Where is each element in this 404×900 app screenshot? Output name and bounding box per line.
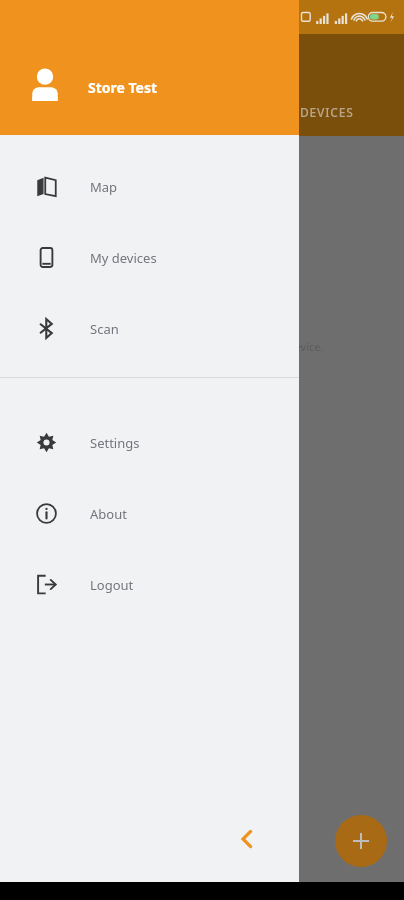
button[interactable]: Settings [0,407,299,478]
button[interactable]: Close drawer [229,821,265,857]
button[interactable]: DEVICES [300,104,354,120]
staticText: Map [90,178,118,196]
button[interactable]: Store Test [0,0,299,135]
button[interactable]: Add device [335,815,387,867]
staticText: My devices [90,249,157,267]
staticText: About [90,505,127,523]
staticText: Store Test [88,78,158,97]
staticText: Logout [90,576,134,594]
button[interactable]: About [0,478,299,549]
staticText: Scan [90,320,119,338]
button[interactable]: Logout [0,549,299,620]
staticText: No device. [270,339,324,354]
button[interactable]: Map [0,151,299,222]
staticText: DEVICES [300,104,354,120]
staticText: Settings [90,434,140,452]
button[interactable]: Scan [0,293,299,364]
button[interactable]: My devices [0,222,299,293]
